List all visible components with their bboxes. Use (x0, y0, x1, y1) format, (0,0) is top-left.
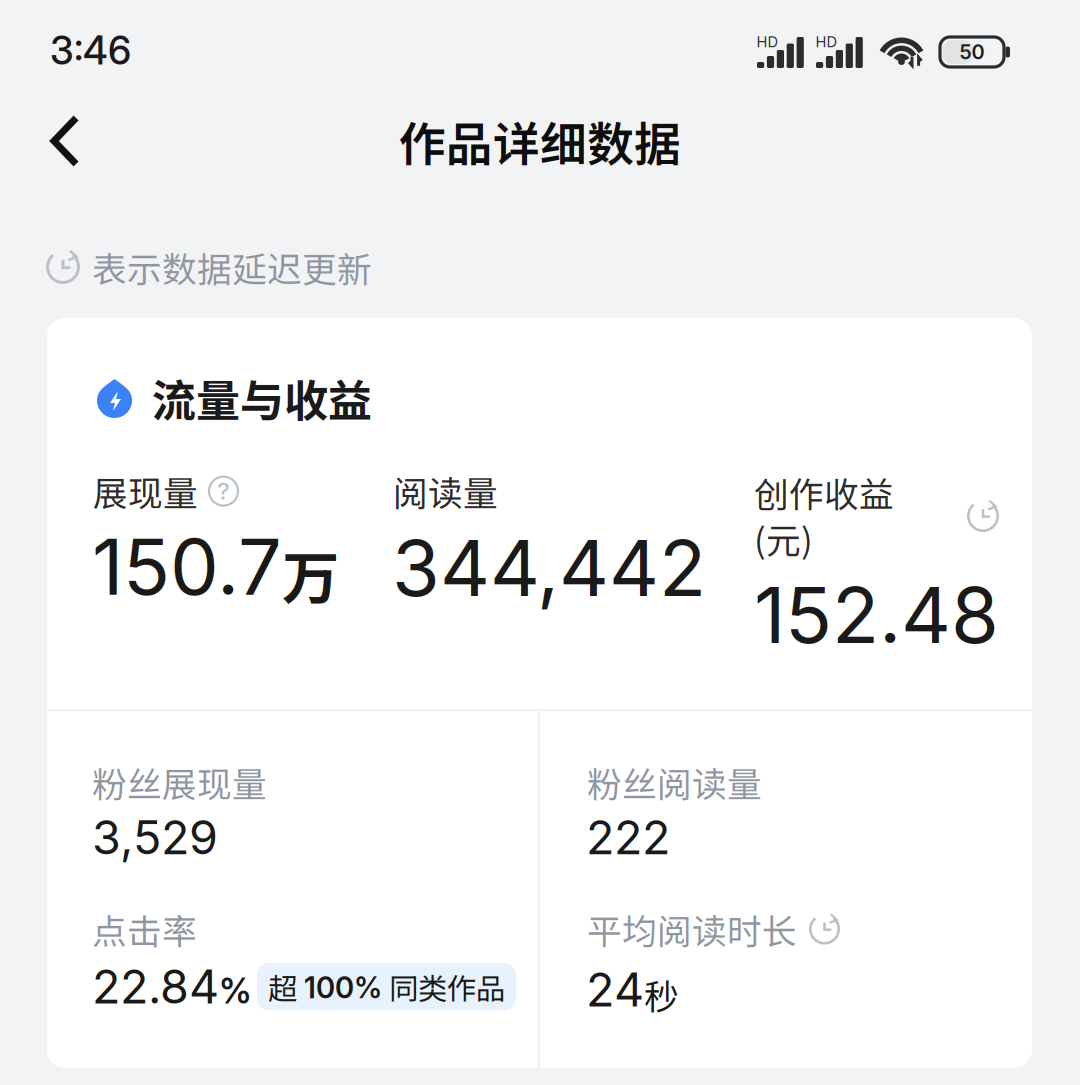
staticText: ? (217, 477, 230, 506)
staticText: 点击率 (92, 904, 197, 954)
staticText: HD (815, 33, 837, 51)
staticText: 展现量 (93, 466, 198, 516)
staticText: 粉丝阅读量 (587, 757, 762, 807)
staticText: 50 (959, 40, 984, 64)
staticText: 344,442 (392, 521, 706, 615)
staticText: HD (756, 33, 778, 51)
staticText: 超 100% 同类作品 (268, 966, 505, 1007)
staticText: 222 (586, 809, 670, 865)
staticText: (元) (754, 513, 813, 563)
staticText: 作品详细数据 (399, 107, 681, 175)
staticText: 表示数据延迟更新 (92, 242, 372, 292)
staticText: 3:46 (50, 27, 131, 74)
staticText: 150.7万 (92, 521, 339, 614)
staticText: 平均阅读时长 (587, 904, 797, 954)
staticText: 24秒 (586, 962, 679, 1019)
staticText: 阅读量 (393, 466, 498, 516)
staticText: 粉丝展现量 (92, 757, 267, 807)
staticText: 22.84% (92, 959, 252, 1014)
staticText: 创作收益 (754, 467, 894, 517)
staticText: 3,529 (92, 809, 218, 865)
button[interactable]: 返回 (0, 0, 94, 96)
staticText: 152.48 (754, 568, 999, 662)
staticText: 流量与收益 (152, 366, 372, 430)
